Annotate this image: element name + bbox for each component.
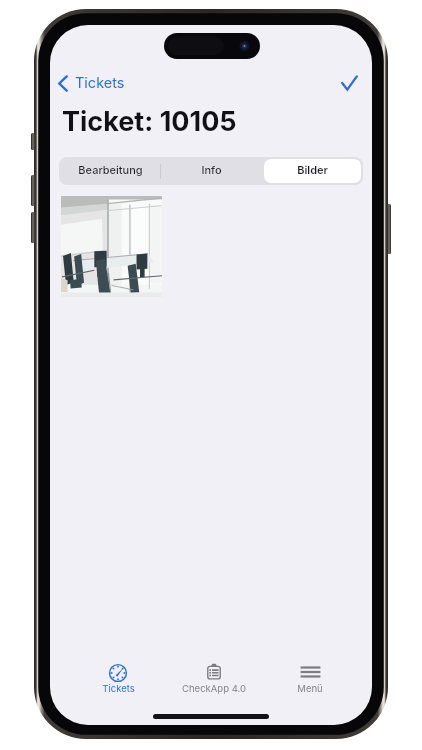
button[interactable]: Tickets [70,663,166,694]
staticText: Ticket: 10105 [62,105,237,138]
staticText: CheckApp 4.0 [182,683,246,694]
staticText: Menü [297,683,323,694]
staticText: Tickets [102,683,135,694]
staticText: Bearbeitung [78,163,143,176]
button[interactable]: Speichern [334,68,364,98]
button[interactable]: Bearbeitung [61,159,159,183]
staticText: Tickets [75,74,125,92]
button[interactable]: Tickets [56,72,127,94]
staticText: Info [201,163,222,176]
button[interactable]: Bilder [264,159,361,183]
button[interactable]: Bild [61,196,162,297]
button[interactable]: CheckApp 4.0 [166,663,262,694]
button[interactable]: Menü [262,663,358,694]
staticText: Bilder [297,163,328,176]
button[interactable]: Info [163,159,260,183]
